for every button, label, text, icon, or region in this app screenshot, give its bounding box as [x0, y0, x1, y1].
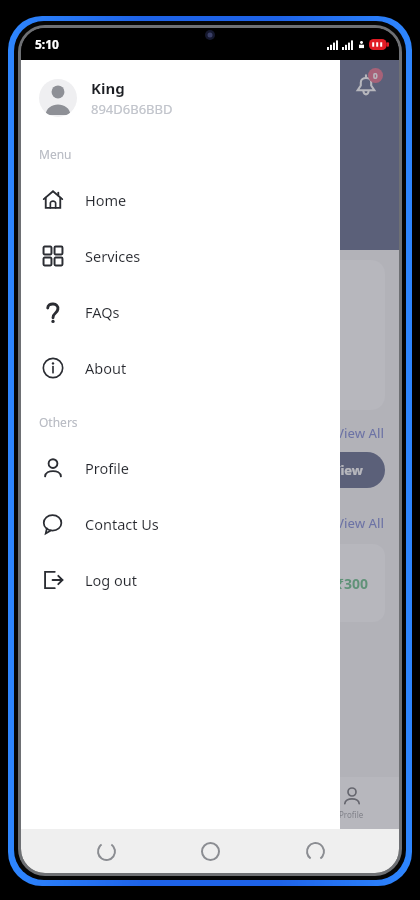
button[interactable]: Services [21, 228, 340, 284]
staticText: Contact Us [85, 514, 159, 534]
button[interactable]: Log out [21, 552, 340, 608]
staticText: Menu [39, 146, 72, 162]
button[interactable]: View All [336, 424, 385, 442]
staticText: Others [39, 414, 78, 430]
staticText: King [91, 78, 125, 98]
staticText: ₹300 [336, 574, 369, 593]
staticText: 5:10 [35, 36, 59, 52]
staticText: Profile [339, 809, 364, 820]
button[interactable]: Recents [86, 831, 126, 871]
staticText: 894D6B6BBD [91, 100, 173, 118]
button[interactable]: Notifications [349, 68, 383, 102]
button[interactable]: Profile [304, 777, 399, 829]
button[interactable]: Home [190, 831, 230, 871]
button[interactable]: Profile [21, 440, 340, 496]
staticText: 0 [373, 70, 378, 81]
button[interactable]: Back [295, 831, 335, 871]
staticText: Services [35, 461, 93, 480]
staticText: Profile [85, 458, 129, 478]
button[interactable]: About [21, 340, 340, 396]
button[interactable]: View [310, 452, 385, 488]
staticText: Log out [85, 570, 138, 590]
button[interactable]: FAQs [21, 284, 340, 340]
staticText: Home [85, 190, 127, 210]
staticText: FAQs [85, 302, 120, 322]
staticText: About [85, 358, 127, 378]
staticText: View [332, 461, 363, 479]
staticText: Services [85, 246, 141, 266]
button[interactable]: View All [336, 514, 385, 532]
button[interactable]: Contact Us [21, 496, 340, 552]
button[interactable]: Home [21, 172, 340, 228]
button[interactable]: King [21, 74, 340, 122]
